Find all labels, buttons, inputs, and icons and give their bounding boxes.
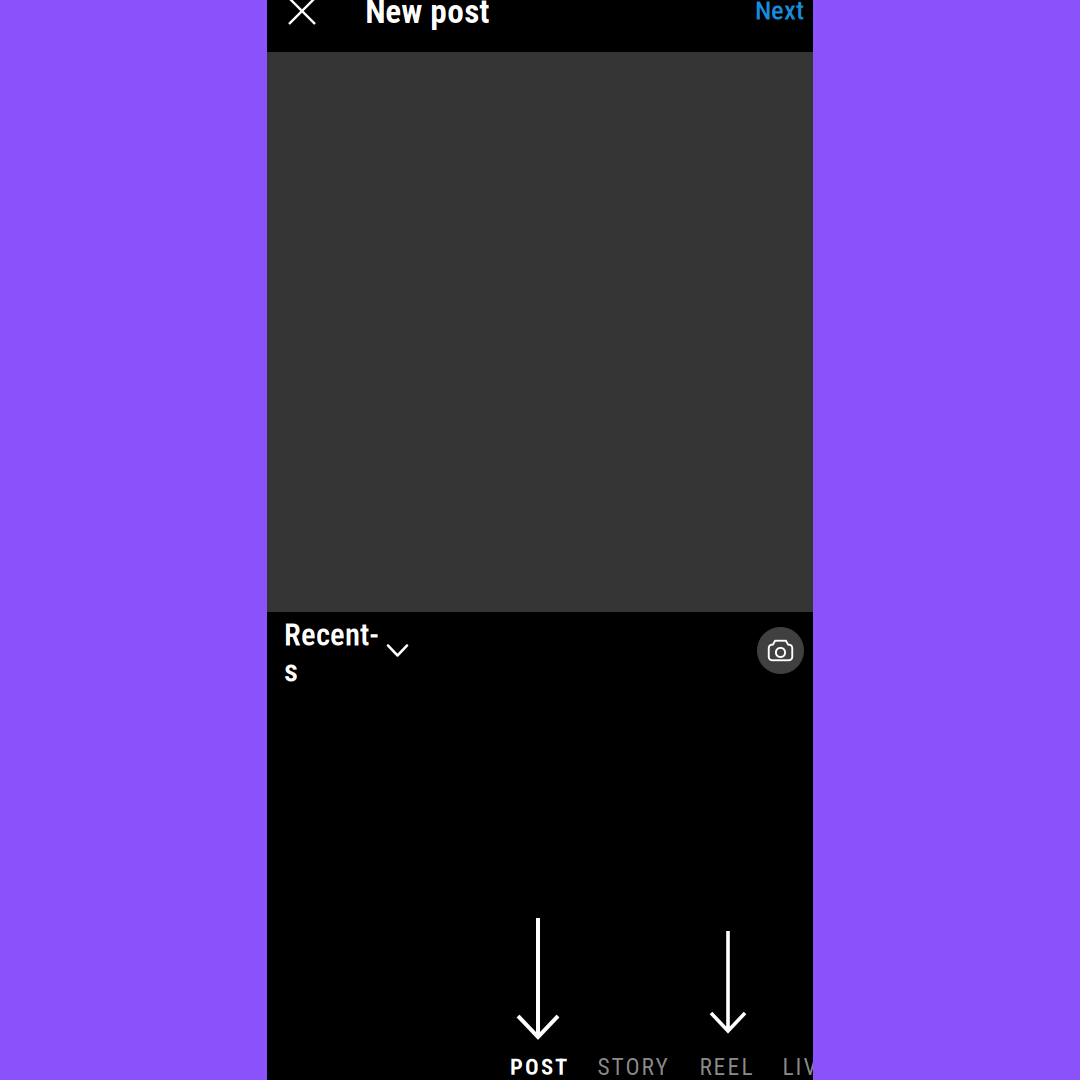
- staticText: R E E L: [699, 1053, 752, 1080]
- button[interactable]: Close: [278, 0, 326, 35]
- button[interactable]: POST: [510, 1055, 574, 1079]
- staticText: Recents: [284, 617, 379, 689]
- button[interactable]: LIVE: [782, 1055, 840, 1079]
- button[interactable]: Next: [747, 0, 819, 31]
- button[interactable]: Open camera: [757, 627, 804, 674]
- staticText: L I V E: [782, 1053, 830, 1080]
- staticText: P O S T: [510, 1054, 567, 1080]
- staticText: Next: [755, 0, 804, 26]
- button[interactable]: REEL: [699, 1055, 759, 1079]
- button[interactable]: Recents: [277, 633, 414, 673]
- staticText: New post: [365, 0, 489, 31]
- staticText: S T O R Y: [597, 1053, 667, 1080]
- button[interactable]: STORY: [597, 1055, 675, 1079]
